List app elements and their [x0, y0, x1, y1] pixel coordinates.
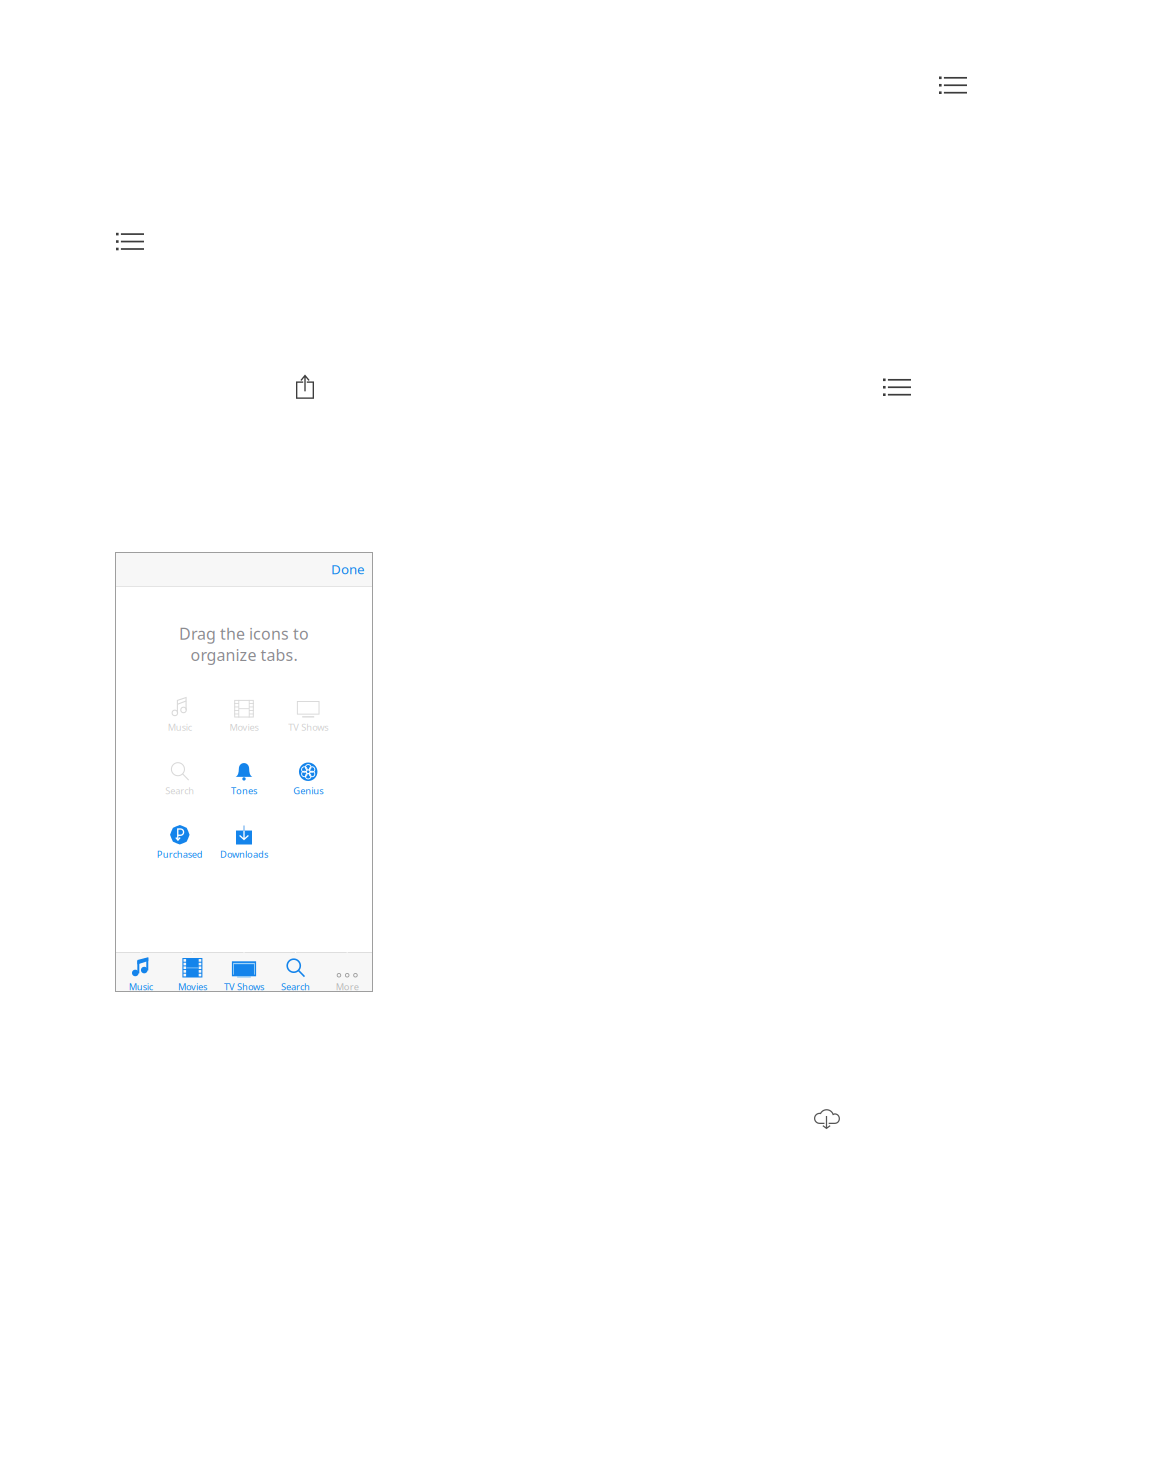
staticText: Search [281, 980, 310, 993]
button[interactable]: List view [116, 233, 144, 250]
staticText: Purchased [157, 848, 203, 860]
staticText: TV Shows [224, 980, 264, 993]
button[interactable]: More [321, 952, 373, 992]
button[interactable]: List view [939, 76, 967, 94]
button[interactable]: Tones [212, 760, 276, 794]
staticText: Done [331, 560, 365, 578]
staticText: organize tabs. [190, 644, 297, 665]
button[interactable]: Purchased [148, 824, 212, 858]
button[interactable]: Search [148, 760, 212, 794]
staticText: Tones [231, 784, 257, 797]
button[interactable]: Search [270, 952, 321, 992]
staticText: Genius [293, 784, 323, 797]
staticText: Movies [229, 721, 258, 733]
button[interactable]: Genius [276, 760, 340, 794]
staticText: Downloads [220, 848, 268, 860]
button[interactable]: Share [296, 375, 314, 399]
staticText: Movies [178, 980, 207, 993]
staticText: TV Shows [288, 721, 328, 733]
staticText: Music [168, 721, 192, 733]
button[interactable]: Downloads [212, 824, 276, 858]
button[interactable]: Download [813, 1106, 840, 1129]
button[interactable]: Music [115, 952, 167, 992]
button[interactable]: Done [313, 552, 365, 586]
button[interactable]: Music [148, 697, 212, 731]
button[interactable]: List view [883, 378, 911, 396]
button[interactable]: Movies [167, 952, 218, 992]
button[interactable]: TV Shows [218, 952, 270, 992]
staticText: More [336, 980, 359, 993]
button[interactable]: Movies [212, 697, 276, 731]
button[interactable]: TV Shows [276, 697, 340, 731]
staticText: Drag the icons to [179, 623, 309, 644]
staticText: Search [165, 784, 194, 797]
staticText: Music [129, 980, 153, 993]
